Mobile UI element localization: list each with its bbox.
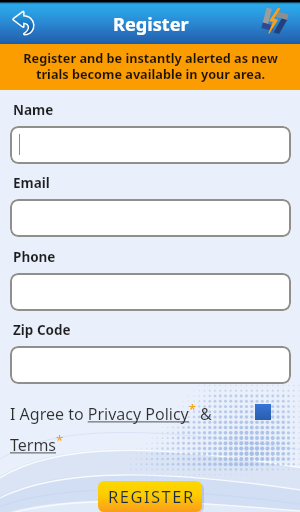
staticText: Zip Code: [13, 321, 71, 339]
staticText: Register and be instantly alerted as new…: [23, 49, 278, 82]
button[interactable]: [10, 199, 291, 237]
button[interactable]: Agree to terms checkbox: [255, 404, 271, 420]
button[interactable]: REGISTER: [98, 481, 202, 512]
button[interactable]: Terms*: [10, 431, 64, 456]
staticText: Register: [113, 12, 189, 37]
button[interactable]: Back: [12, 10, 36, 34]
button[interactable]: [10, 126, 291, 164]
button[interactable]: [10, 346, 291, 384]
button[interactable]: App logo: [262, 8, 288, 34]
staticText: Phone: [13, 248, 56, 266]
button[interactable]: [10, 273, 291, 311]
staticText: REGISTER: [108, 485, 195, 507]
button[interactable]: I Agree to Privacy Policy* &: [10, 400, 212, 425]
staticText: Email: [13, 174, 50, 192]
staticText: Name: [13, 101, 54, 119]
